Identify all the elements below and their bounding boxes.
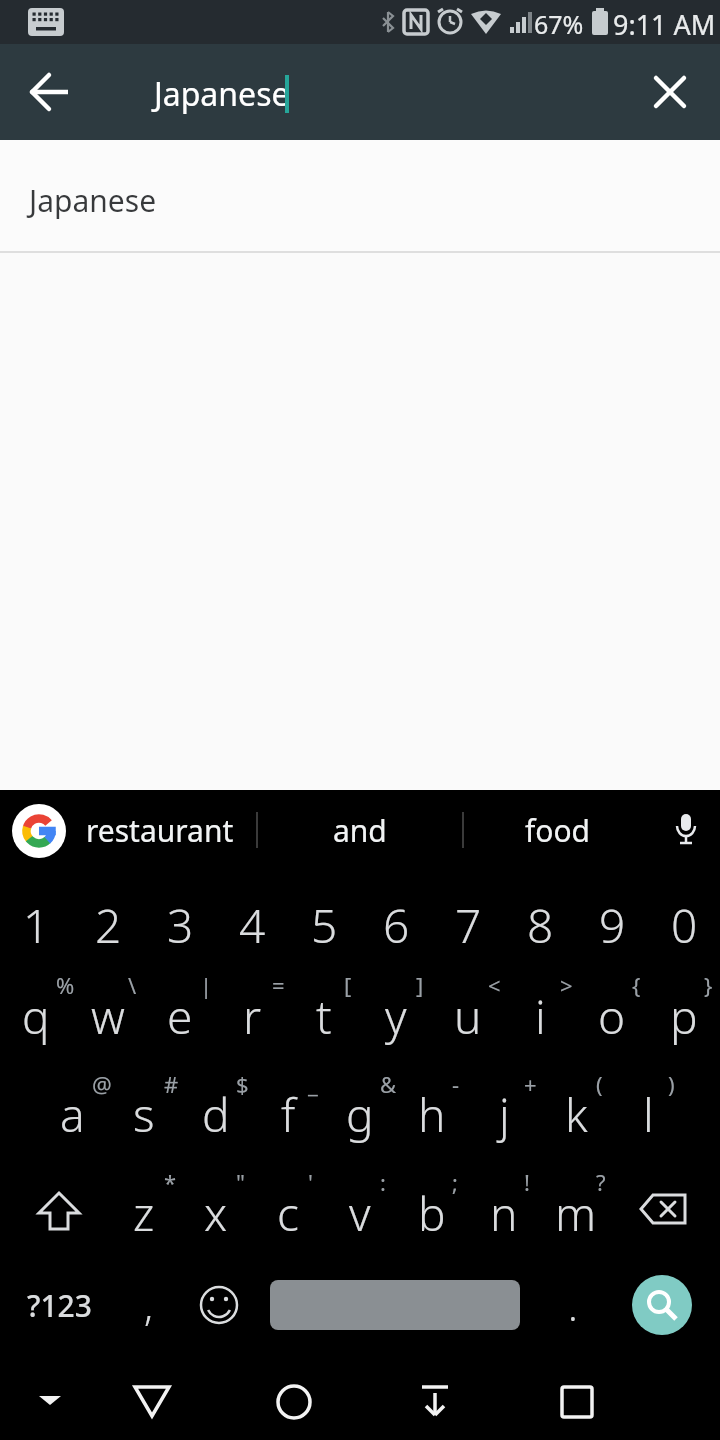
button[interactable] — [401, 1368, 469, 1436]
staticText: v — [349, 1182, 371, 1245]
staticText: ! — [524, 1167, 530, 1197]
button[interactable] — [170, 1256, 268, 1354]
button[interactable]: 2 — [72, 876, 144, 974]
staticText: ? — [596, 1167, 606, 1197]
button[interactable]: y — [360, 967, 432, 1065]
staticText: Japanese — [29, 180, 157, 221]
button[interactable] — [10, 1164, 108, 1262]
staticText: h — [418, 1083, 446, 1146]
staticText: \ — [128, 970, 137, 1000]
staticText: $ — [236, 1069, 249, 1099]
button[interactable]: p — [648, 967, 720, 1065]
button[interactable]: h — [396, 1065, 468, 1163]
button[interactable]: restaurant — [80, 790, 240, 870]
button[interactable]: Japanese — [0, 140, 720, 253]
staticText: + — [524, 1069, 537, 1099]
button[interactable]: 4 — [216, 876, 288, 974]
button[interactable]: ?123 — [10, 1256, 108, 1354]
button[interactable]: n — [468, 1164, 540, 1262]
button[interactable]: j — [468, 1065, 540, 1163]
button[interactable]: , — [112, 1256, 184, 1354]
staticText: > — [560, 970, 573, 1000]
button[interactable]: s — [108, 1065, 180, 1163]
button[interactable]: 8 — [504, 876, 576, 974]
staticText: g — [346, 1083, 374, 1146]
staticText: - — [452, 1069, 460, 1099]
button[interactable]: d — [180, 1065, 252, 1163]
staticText: and — [333, 810, 387, 851]
button[interactable]: b — [396, 1164, 468, 1262]
staticText: 8 — [527, 894, 554, 957]
staticText: k — [565, 1083, 588, 1146]
button[interactable]: e — [144, 967, 216, 1065]
button[interactable]: g — [324, 1065, 396, 1163]
button[interactable]: x — [180, 1164, 252, 1262]
staticText: o — [598, 985, 626, 1048]
button[interactable]: t — [288, 967, 360, 1065]
button[interactable]: l — [612, 1065, 684, 1163]
staticText: u — [454, 985, 482, 1048]
staticText: < — [488, 970, 501, 1000]
staticText: x — [204, 1182, 228, 1245]
staticText: food — [525, 810, 591, 851]
button[interactable]: v — [324, 1164, 396, 1262]
button[interactable]: f — [252, 1065, 324, 1163]
button[interactable] — [12, 804, 66, 858]
staticText: s — [133, 1083, 155, 1146]
button[interactable]: q — [0, 967, 72, 1065]
button[interactable]: i — [504, 967, 576, 1065]
staticText: ' — [308, 1167, 313, 1197]
staticText: 1 — [23, 894, 50, 957]
staticText: 3 — [167, 894, 194, 957]
staticText: i — [535, 985, 546, 1048]
button[interactable] — [270, 1280, 520, 1330]
button[interactable]: and — [280, 790, 440, 870]
staticText: 9 — [599, 894, 626, 957]
button[interactable] — [632, 1275, 692, 1335]
staticText: 0 — [671, 894, 698, 957]
button[interactable]: 9 — [576, 876, 648, 974]
staticText: c — [277, 1182, 299, 1245]
button[interactable]: 0 — [648, 876, 720, 974]
button[interactable] — [118, 1368, 186, 1436]
button[interactable]: food — [478, 790, 638, 870]
button[interactable]: c — [252, 1164, 324, 1262]
staticText: p — [670, 985, 698, 1048]
button[interactable]: a — [36, 1065, 108, 1163]
button[interactable]: 6 — [360, 876, 432, 974]
staticText: restaurant — [86, 810, 234, 851]
button[interactable]: 3 — [144, 876, 216, 974]
button[interactable]: r — [216, 967, 288, 1065]
staticText: 6 — [383, 894, 410, 957]
button[interactable] — [543, 1368, 611, 1436]
button[interactable]: 1 — [0, 876, 72, 974]
staticText: ] — [416, 970, 424, 1000]
button[interactable]: u — [432, 967, 504, 1065]
button[interactable] — [260, 1368, 328, 1436]
button[interactable]: . — [537, 1256, 609, 1354]
button[interactable] — [614, 1164, 712, 1262]
staticText: r — [243, 985, 262, 1048]
staticText: @ — [92, 1069, 112, 1099]
staticText: e — [167, 985, 193, 1048]
staticText: b — [418, 1182, 446, 1245]
staticText: z — [133, 1182, 155, 1245]
button[interactable] — [18, 60, 82, 124]
button[interactable] — [22, 1372, 78, 1428]
button[interactable] — [638, 60, 702, 124]
staticText: , — [144, 1278, 153, 1332]
staticText: ?123 — [27, 1285, 92, 1326]
button[interactable]: 5 — [288, 876, 360, 974]
button[interactable]: z — [108, 1164, 180, 1262]
button[interactable] — [658, 802, 714, 858]
button[interactable]: 7 — [432, 876, 504, 974]
staticText: 67% — [534, 7, 584, 41]
button[interactable]: m — [540, 1164, 612, 1262]
staticText: m — [555, 1182, 597, 1245]
button[interactable]: w — [72, 967, 144, 1065]
staticText: 4 — [239, 894, 266, 957]
button[interactable]: k — [540, 1065, 612, 1163]
staticText: d — [202, 1083, 230, 1146]
button[interactable]: o — [576, 967, 648, 1065]
staticText: } — [704, 970, 713, 1000]
